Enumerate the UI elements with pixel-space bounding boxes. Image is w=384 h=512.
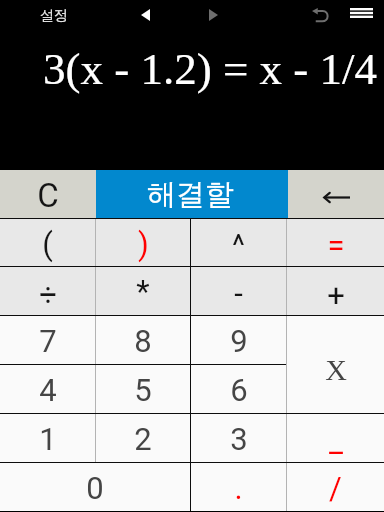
button[interactable]: 해결할	[96, 170, 288, 218]
button[interactable]: _	[287, 414, 384, 462]
button[interactable]: =	[287, 219, 384, 266]
staticText: ^	[232, 227, 245, 263]
staticText: _	[329, 423, 343, 459]
button[interactable]: 4	[0, 365, 95, 413]
button[interactable]: Next step	[189, 0, 237, 30]
staticText: 6	[230, 372, 248, 408]
button[interactable]: 1	[0, 414, 95, 462]
button[interactable]: -	[191, 267, 286, 315]
staticText: 설정	[40, 7, 68, 25]
button[interactable]: Previous step	[121, 0, 169, 30]
staticText: 7	[39, 323, 57, 359]
staticText: C	[37, 176, 59, 215]
staticText: 5	[134, 372, 152, 408]
staticText: =	[327, 227, 345, 263]
staticText: 8	[134, 323, 152, 359]
button[interactable]: 6	[191, 365, 286, 413]
staticText: 4	[39, 372, 57, 408]
button[interactable]: 7	[0, 316, 95, 364]
button[interactable]: (	[0, 219, 95, 266]
button[interactable]: +	[287, 267, 384, 315]
button[interactable]: 5	[96, 365, 190, 413]
button[interactable]: 3	[191, 414, 286, 462]
staticText: .	[234, 470, 243, 506]
staticText: 2	[134, 421, 152, 457]
button[interactable]: 8	[96, 316, 190, 364]
button[interactable]: .	[191, 463, 286, 511]
staticText: 1	[39, 421, 57, 457]
staticText: 9	[230, 323, 248, 359]
button[interactable]: 2	[96, 414, 190, 462]
staticText: )	[138, 226, 149, 262]
staticText: 3(x - 1.2) = x - 1/4	[43, 44, 378, 94]
staticText: /	[329, 470, 342, 506]
button[interactable]: *	[96, 267, 190, 315]
staticText: 3	[230, 421, 248, 457]
button[interactable]: 9	[191, 316, 286, 364]
staticText: ÷	[39, 277, 57, 313]
staticText: X	[325, 353, 347, 386]
staticText: 해결할	[147, 176, 234, 213]
staticText: (	[42, 226, 53, 262]
button[interactable]: Menu	[338, 0, 384, 28]
button[interactable]: C	[0, 170, 96, 218]
staticText: 0	[86, 470, 104, 506]
staticText: *	[136, 273, 150, 309]
button[interactable]: 0	[0, 463, 190, 511]
button[interactable]: 설정	[22, 1, 86, 31]
button[interactable]	[288, 170, 384, 218]
button[interactable]: ^	[191, 219, 286, 266]
button[interactable]: X	[287, 316, 384, 413]
button[interactable]: )	[96, 219, 190, 266]
button[interactable]: /	[287, 463, 384, 511]
staticText: +	[327, 277, 345, 313]
button[interactable]: Undo	[296, 0, 344, 30]
staticText: -	[234, 275, 243, 311]
button[interactable]: ÷	[0, 267, 95, 315]
